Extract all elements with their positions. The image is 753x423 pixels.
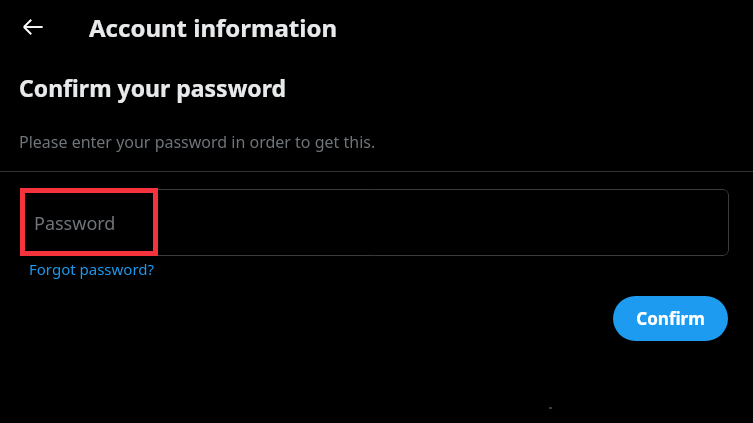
button[interactable]: Back [13, 7, 53, 47]
staticText: Please enter your password in order to g… [19, 131, 376, 153]
staticText: Password [34, 211, 116, 236]
staticText: Forgot password? [29, 259, 155, 279]
staticText: Account information [89, 11, 337, 44]
button[interactable]: Confirm [613, 296, 728, 341]
staticText: Confirm your password [19, 72, 287, 103]
staticText: Confirm [636, 307, 705, 330]
button[interactable]: Forgot password? [29, 259, 155, 279]
button[interactable]: Password [20, 189, 729, 256]
